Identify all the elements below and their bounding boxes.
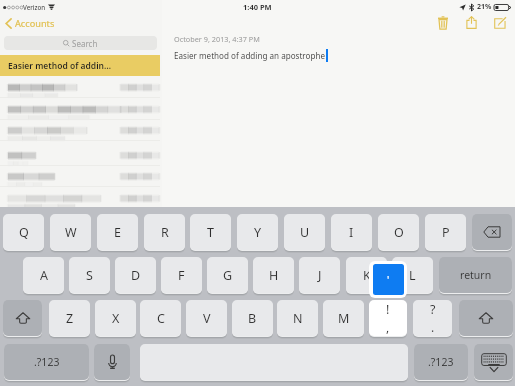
button[interactable]: ? [413,300,452,336]
button[interactable]: V [186,300,227,336]
staticText: T [207,224,214,241]
staticText: , [386,319,390,335]
button[interactable]: Y [237,214,278,250]
button[interactable] [0,166,162,187]
staticText: J [318,267,322,284]
staticText: Z [66,310,74,327]
button[interactable] [0,77,162,98]
staticText: U [300,224,310,241]
button[interactable]: Share [461,14,481,31]
staticText: Q [19,224,29,241]
staticText: Verizon [23,3,46,11]
staticText: 21% [477,2,492,12]
button[interactable]: Shift [459,300,513,336]
button[interactable]: Apostrophe [369,261,407,298]
staticText: H [269,267,279,284]
staticText: .?123 [428,355,454,369]
button[interactable] [0,188,162,209]
button[interactable]: L [392,257,433,293]
button[interactable]: G [207,257,248,293]
button[interactable]: Z [49,300,90,336]
staticText: X [112,310,120,327]
staticText: S [86,267,93,284]
staticText: V [203,310,211,327]
staticText: October 9, 2013, 4:37 PM [174,34,260,44]
staticText: Accounts [15,17,55,30]
staticText: K [363,267,371,284]
staticText: Easier method of adding an apostrophe [174,50,325,61]
staticText: E [114,224,121,241]
button[interactable]: J [299,257,340,293]
button[interactable]: .?123 [414,344,468,380]
button[interactable]: F [161,257,202,293]
button[interactable]: Search [4,36,157,50]
staticText: I [349,224,354,241]
button[interactable]: S [69,257,110,293]
staticText: return [460,268,492,282]
button[interactable]: B [232,300,273,336]
button[interactable] [0,99,162,120]
staticText: A [40,267,48,284]
button[interactable]: P [425,214,466,250]
button[interactable]: A [23,257,64,293]
staticText: B [248,310,257,327]
button[interactable]: C [140,300,181,336]
staticText: L [409,267,416,284]
button[interactable]: E [97,214,138,250]
button[interactable]: Delete [433,14,453,31]
button[interactable]: U [284,214,325,250]
staticText: ? [430,301,436,318]
button[interactable]: N [277,300,318,336]
button[interactable]: Accounts [5,14,55,32]
button[interactable]: X [95,300,136,336]
button[interactable]: Hide keyboard [474,344,513,380]
staticText: M [338,310,350,327]
button[interactable]: O [378,214,419,250]
staticText: C [157,310,165,327]
button[interactable]: Dictate [94,344,130,380]
staticText: ! [386,301,390,318]
staticText: F [178,267,185,284]
staticText: O [394,224,404,241]
button[interactable]: R [144,214,185,250]
button[interactable]: D [115,257,156,293]
staticText: Search [72,38,98,49]
button[interactable]: Easier method of addin… [0,55,160,76]
staticText: .?123 [34,355,60,369]
button[interactable]: T [190,214,231,250]
button[interactable]: return [439,257,512,293]
staticText: Easier method of addin… [8,60,112,72]
button[interactable]: I [331,214,372,250]
button[interactable]: ! [369,300,407,336]
button[interactable]: Shift [3,300,42,336]
staticText: G [223,267,233,284]
button[interactable] [0,120,162,141]
staticText: Y [254,224,262,241]
staticText: 1:40 PM [243,2,272,12]
staticText: R [161,224,169,241]
staticText: ' [387,273,390,287]
staticText: W [65,224,77,241]
button[interactable]: H [253,257,294,293]
button[interactable] [0,145,162,166]
button[interactable]: M [323,300,364,336]
button[interactable]: Backspace [472,214,512,250]
button[interactable]: W [50,214,91,250]
button[interactable]: .?123 [4,344,89,380]
staticText: . [431,319,435,335]
button[interactable]: Q [3,214,44,250]
staticText: D [131,267,141,284]
staticText: N [293,310,303,327]
button[interactable]: Compose [490,14,510,31]
staticText: P [442,224,450,241]
button[interactable]: K [346,257,387,293]
